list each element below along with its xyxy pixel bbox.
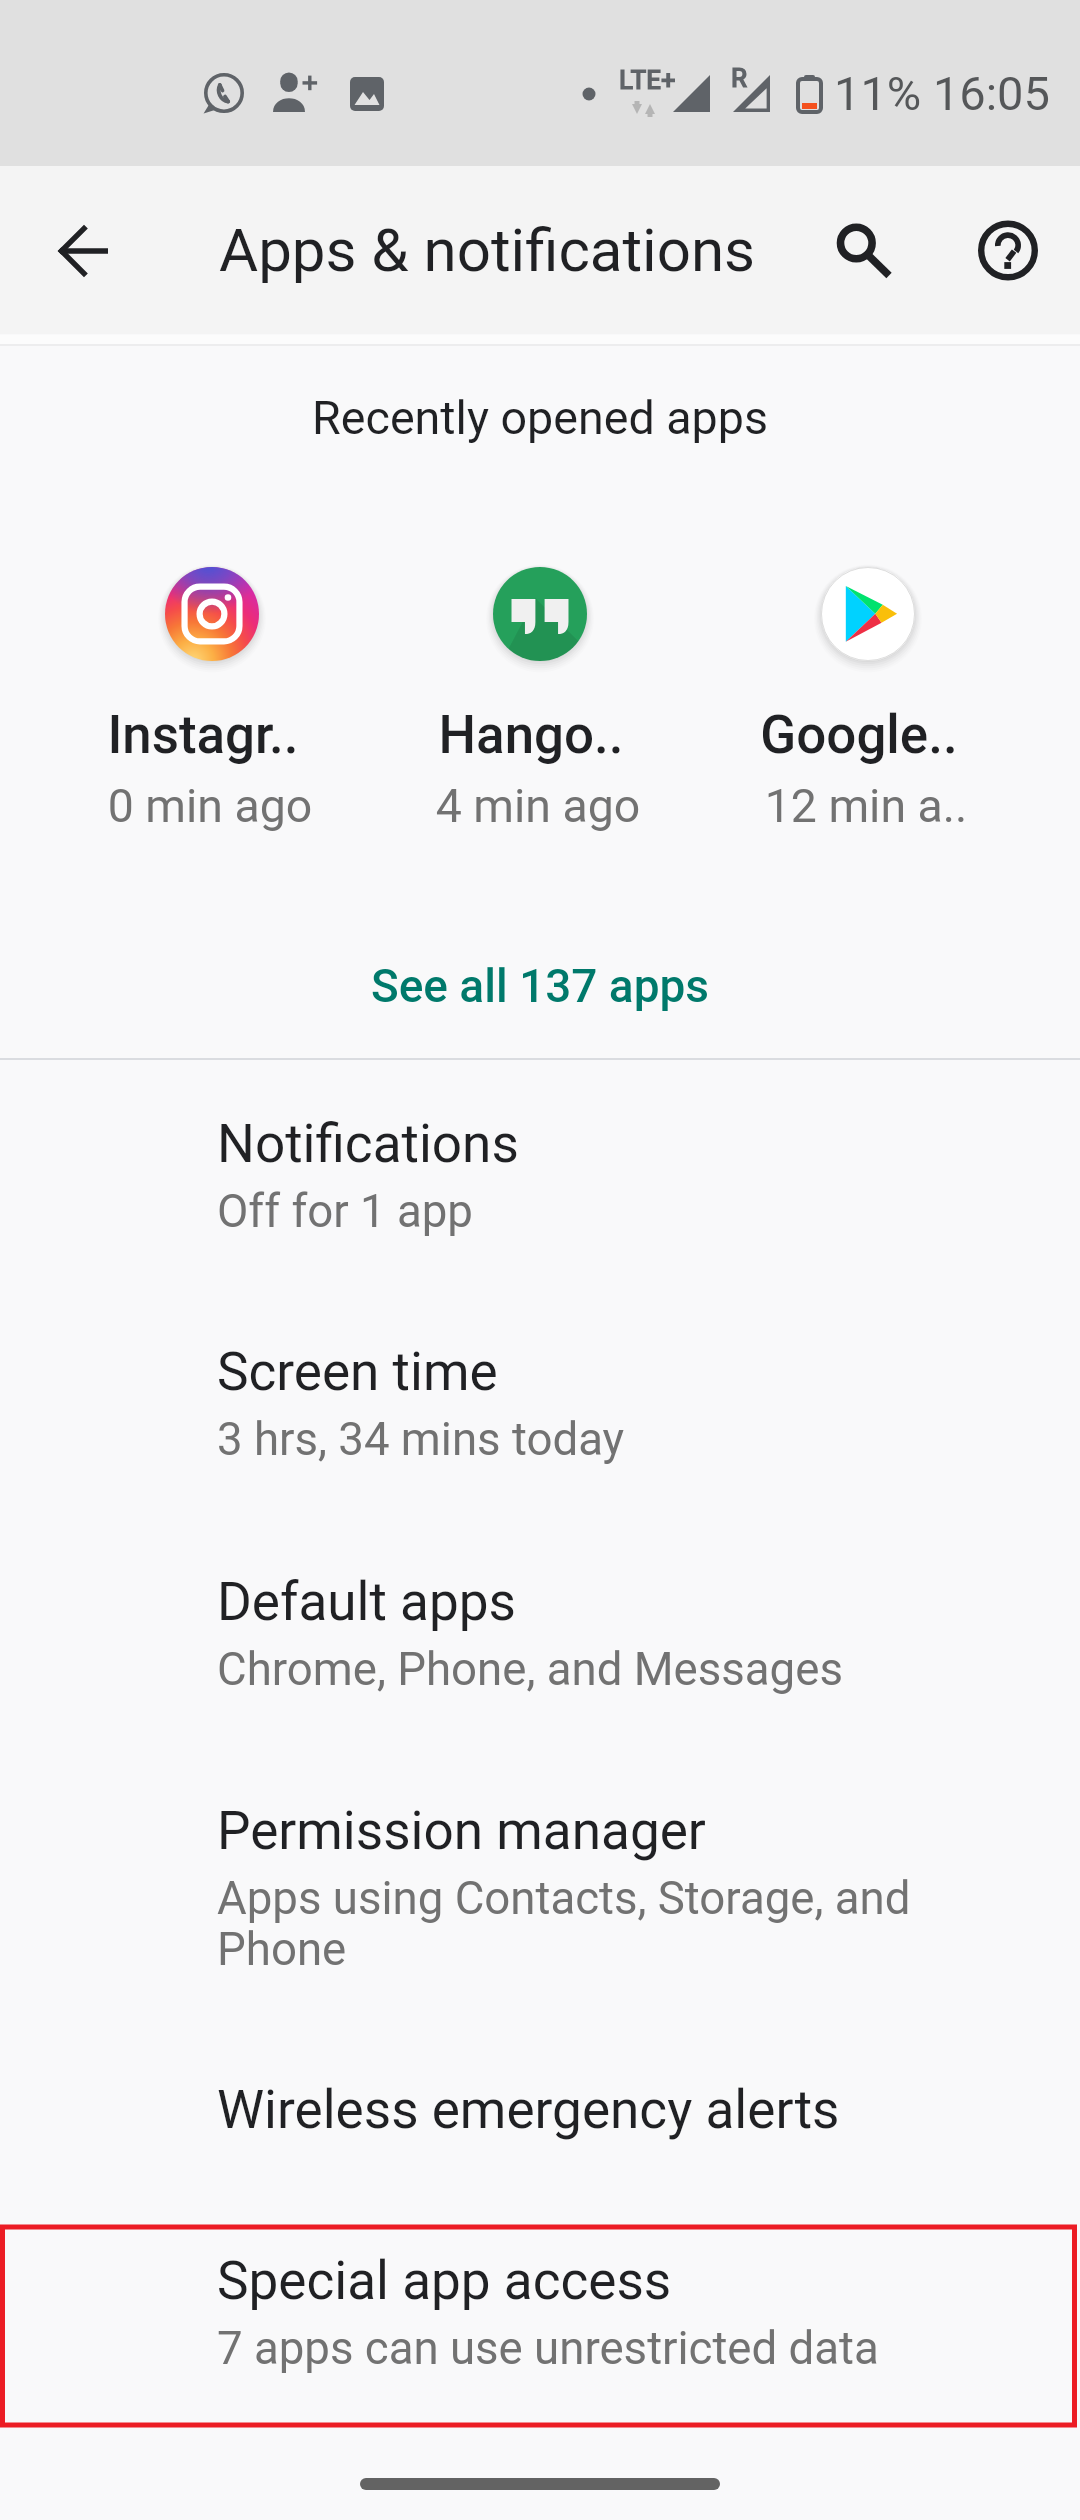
button[interactable]: Google.. (704, 540, 1032, 870)
button[interactable]: Wireless emergency alerts (0, 2021, 1080, 2191)
staticText: 12 min a.. (702, 779, 1030, 833)
button[interactable]: Permission manager (0, 1742, 1080, 1970)
staticText: 0 min ago (46, 779, 374, 833)
staticText: Recently opened apps (0, 391, 1080, 446)
staticText: Default apps (217, 1571, 516, 1633)
button[interactable]: Hango.. (376, 540, 704, 870)
button[interactable]: Search (814, 209, 898, 293)
staticText: LTE+ (619, 65, 676, 95)
staticText: Chrome, Phone, and Messages (217, 1643, 957, 1696)
staticText: 4 min ago (374, 779, 702, 833)
button[interactable]: Default apps (0, 1513, 1080, 1741)
staticText: See all 137 apps (290, 959, 790, 1013)
button[interactable]: Special app access (0, 2192, 1080, 2420)
staticText: Notifications (217, 1113, 519, 1175)
button[interactable]: Screen time (0, 1283, 1080, 1511)
staticText: Instagr.. (39, 704, 367, 766)
staticText: Apps & notifications (219, 215, 755, 285)
staticText: R (731, 63, 748, 93)
staticText: 11% 16:05 (834, 66, 1050, 121)
staticText: Google.. (695, 704, 1023, 766)
staticText: Permission manager (217, 1800, 706, 1862)
button[interactable]: Navigate up (42, 209, 126, 293)
staticText: Off for 1 app (217, 1185, 957, 1238)
staticText: 3 hrs, 34 mins today (217, 1413, 957, 1466)
button[interactable]: See all 137 apps (290, 932, 790, 1036)
staticText: 7 apps can use unrestricted data (217, 2322, 957, 2375)
staticText: Special app access (217, 2250, 672, 2312)
staticText: Wireless emergency alerts (217, 2079, 840, 2141)
button[interactable]: Instagr.. (48, 540, 376, 870)
staticText: Hango.. (367, 704, 695, 766)
staticText: Screen time (217, 1341, 498, 1403)
button[interactable]: Help (966, 208, 1050, 292)
button[interactable]: Notifications (0, 1055, 1080, 1283)
staticText: Apps using Contacts, Storage, and Phone (217, 1872, 957, 1977)
